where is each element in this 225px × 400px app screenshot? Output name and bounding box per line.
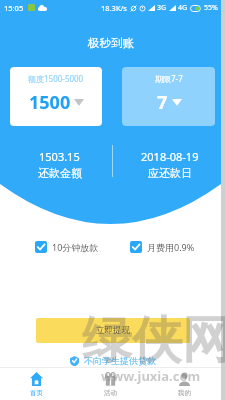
staticText: 应还款日 xyxy=(148,166,192,180)
button[interactable]: 首页 xyxy=(0,368,73,400)
staticText: 4G xyxy=(178,3,188,13)
staticText: 15:05 xyxy=(4,3,24,13)
staticText: 55% xyxy=(204,3,218,13)
button[interactable]: 立即提现 xyxy=(36,318,190,343)
staticText: 还款金额 xyxy=(38,166,82,180)
button[interactable]: 月费用0.9% xyxy=(130,241,195,253)
staticText: 1503.15 xyxy=(39,149,80,164)
staticText: 首页 xyxy=(30,389,43,397)
staticText: www.juxia.com xyxy=(101,367,201,385)
button[interactable]: 活动 xyxy=(73,368,147,400)
staticText: 期限7-7 xyxy=(155,73,183,84)
staticText: 立即提现 xyxy=(96,325,130,336)
staticText: 10分钟放款 xyxy=(52,241,99,253)
button[interactable]: 10分钟放款 xyxy=(35,241,99,253)
staticText: 1500 xyxy=(29,90,71,115)
staticText: 不向学生提供贷款 xyxy=(84,355,156,366)
staticText: 我的 xyxy=(178,389,191,397)
staticText: 月费用0.9% xyxy=(147,241,195,253)
staticText: 绿侠网 xyxy=(82,309,225,372)
staticText: 极秒到账 xyxy=(88,36,134,50)
button[interactable]: 期限7-7 xyxy=(122,67,215,126)
button[interactable]: 额度1500-5000 xyxy=(10,67,102,126)
staticText: 18.3K/s xyxy=(101,3,127,13)
staticText: 3G xyxy=(157,3,167,13)
staticText: 额度1500-5000 xyxy=(28,73,84,84)
staticText: 7 xyxy=(157,90,168,115)
button[interactable]: 我的 xyxy=(147,368,221,400)
staticText: 2018-08-19 xyxy=(141,149,199,164)
staticText: 活动 xyxy=(104,389,117,397)
